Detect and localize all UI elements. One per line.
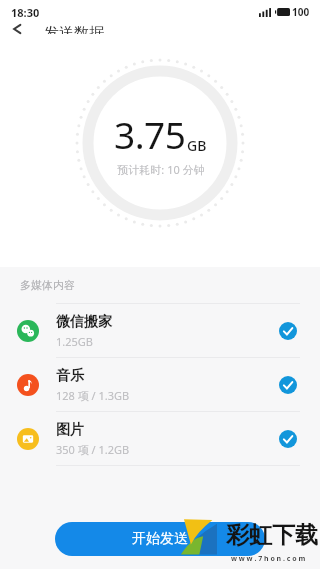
button[interactable]: Selected 微信搬家 bbox=[279, 322, 297, 340]
staticText: 3.75 bbox=[114, 109, 186, 159]
button[interactable]: 开始发送 bbox=[55, 522, 265, 556]
staticText: 18:30 bbox=[11, 5, 40, 20]
staticText: 音乐 bbox=[56, 367, 84, 385]
button[interactable]: Selected 音乐 bbox=[279, 376, 297, 394]
staticText: 开始发送 bbox=[132, 530, 188, 548]
staticText: 128 项 / 1.3GB bbox=[56, 388, 130, 403]
staticText: 多媒体内容 bbox=[20, 278, 75, 292]
staticText: GB bbox=[187, 136, 207, 155]
staticText: 100 bbox=[292, 5, 310, 19]
button[interactable]: Selected 图片 bbox=[279, 430, 297, 448]
button[interactable]: Back bbox=[0, 24, 34, 34]
staticText: 彩虹下载 bbox=[226, 521, 318, 550]
staticText: 微信搬家 bbox=[56, 313, 112, 331]
button[interactable]: 微信搬家 bbox=[0, 304, 320, 357]
staticText: 预计耗时: 10 分钟 bbox=[117, 162, 205, 177]
staticText: w w w . 7 h o n . c o m bbox=[231, 554, 306, 564]
button[interactable]: 音乐 bbox=[0, 358, 320, 411]
staticText: 图片 bbox=[56, 421, 84, 439]
staticText: 发送数据 bbox=[44, 24, 104, 34]
staticText: 1.25GB bbox=[56, 334, 93, 349]
staticText: 350 项 / 1.2GB bbox=[56, 442, 130, 457]
button[interactable]: 图片 bbox=[0, 412, 320, 465]
